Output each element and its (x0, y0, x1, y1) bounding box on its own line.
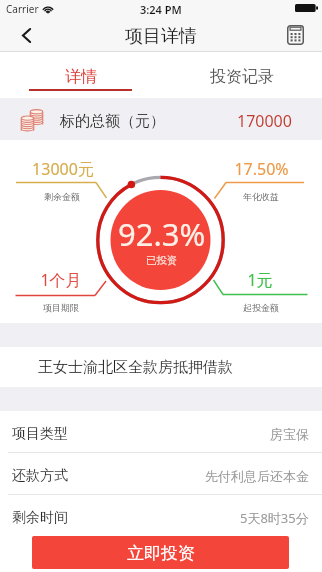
staticText: 年化收益 (243, 191, 279, 202)
staticText: 立即投资 (127, 543, 195, 564)
staticText: 投资记录 (210, 67, 274, 87)
button[interactable]: 详情 (0, 52, 161, 98)
button[interactable]: 立即投资 (32, 536, 289, 569)
staticText: 标的总额（元） (60, 112, 165, 131)
button[interactable]: 剩余时间 (0, 495, 322, 536)
button[interactable]: Calculator (286, 18, 322, 51)
staticText: 项目详情 (125, 25, 197, 48)
button[interactable]: 还款方式 (0, 453, 322, 494)
staticText: 170000 (237, 110, 292, 132)
staticText: 92.3% (118, 213, 206, 255)
staticText: 1元 (247, 269, 273, 291)
staticText: 起投金额 (243, 302, 279, 313)
button[interactable]: 项目类型 (0, 411, 322, 452)
staticText: 先付利息后还本金 (205, 468, 309, 484)
staticText: 项目类型 (12, 425, 68, 443)
staticText: 5天8时35分 (240, 509, 309, 527)
staticText: 已投资 (146, 254, 178, 267)
staticText: 剩余金额 (44, 191, 80, 202)
staticText: 王女士渝北区全款房抵押借款 (38, 358, 233, 377)
staticText: 详情 (65, 67, 97, 87)
button[interactable]: 投资记录 (161, 52, 322, 98)
staticText: 13000元 (32, 158, 94, 180)
staticText: 1个月 (40, 269, 82, 291)
staticText: 还款方式 (12, 467, 68, 485)
button[interactable]: Back (0, 18, 46, 51)
staticText: 房宝保 (270, 426, 309, 442)
staticText: 项目期限 (43, 302, 79, 313)
staticText: 3:24 PM (140, 2, 182, 17)
staticText: Carrier (6, 2, 39, 16)
staticText: 17.50% (234, 158, 289, 180)
staticText: 剩余时间 (12, 509, 68, 527)
